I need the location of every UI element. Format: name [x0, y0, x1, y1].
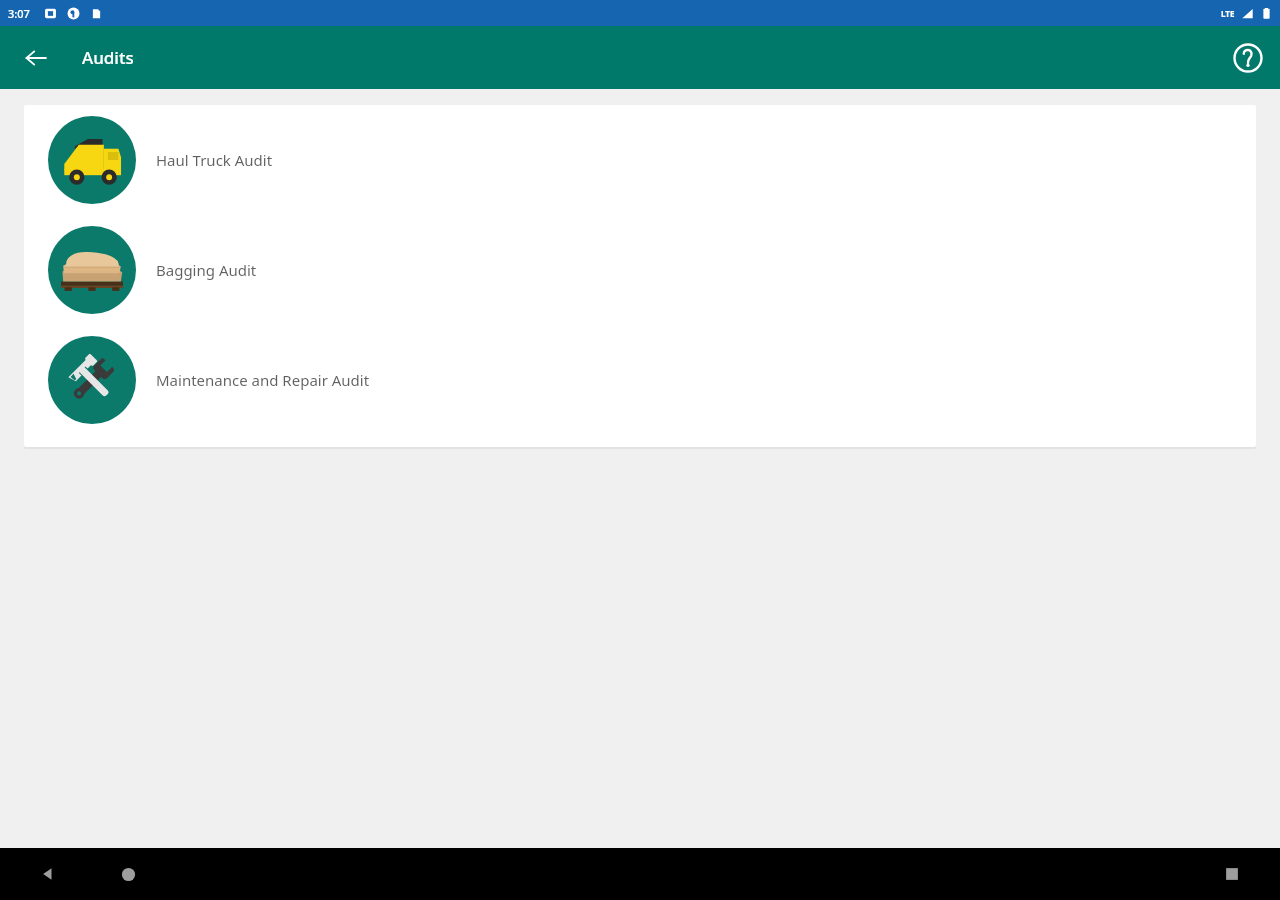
- staticText: Bagging Audit: [156, 260, 257, 280]
- staticText: Haul Truck Audit: [156, 150, 273, 170]
- button[interactable]: Back: [12, 34, 60, 82]
- button[interactable]: Home: [104, 850, 152, 898]
- button[interactable]: Haul Truck Audit: [24, 105, 1256, 215]
- staticText: 3:07: [8, 6, 30, 21]
- staticText: Maintenance and Repair Audit: [156, 370, 370, 390]
- button[interactable]: Bagging Audit: [24, 215, 1256, 325]
- button[interactable]: Maintenance and Repair Audit: [24, 325, 1256, 435]
- button[interactable]: Back: [24, 850, 72, 898]
- button[interactable]: Help: [1224, 34, 1272, 82]
- staticText: Audits: [82, 46, 134, 69]
- staticText: LTE: [1221, 8, 1235, 19]
- button[interactable]: Recent apps: [1208, 850, 1256, 898]
